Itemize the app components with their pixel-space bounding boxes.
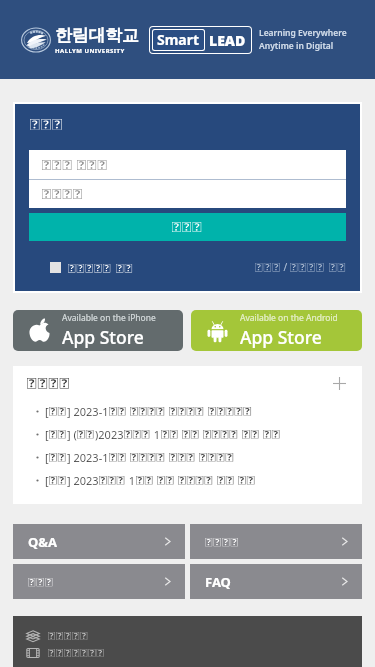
button[interactable] (190, 524, 362, 559)
staticText: 1 (151, 427, 161, 442)
staticText: ] ( (67, 427, 77, 442)
staticText: ] 2023 (67, 473, 99, 488)
button[interactable]: [ (13, 400, 362, 423)
button[interactable]: Available on the Android (191, 310, 362, 351)
staticText: Learning Everywhere (259, 27, 347, 39)
staticText: App Store (240, 325, 322, 349)
staticText: HALLYM UNIVERSITY (55, 47, 125, 55)
staticText: ] 2023-1 (67, 450, 109, 465)
button[interactable] (13, 647, 362, 659)
other: Smart LEAD (152, 29, 249, 51)
staticText: LEAD (209, 31, 246, 50)
staticText: [ (45, 427, 49, 442)
button[interactable]: Available on the iPhone (13, 310, 183, 351)
staticText: App Store (62, 325, 144, 349)
staticText: ] 2023-1 (67, 404, 109, 419)
button[interactable] (13, 624, 362, 647)
button[interactable] (50, 260, 133, 275)
button[interactable]: / (255, 258, 346, 276)
button[interactable]: More notices (328, 372, 350, 394)
staticText: FAQ (205, 573, 231, 591)
button[interactable]: [ (13, 446, 362, 469)
staticText: Q&A (28, 533, 58, 551)
other: Hallym University (21, 25, 51, 55)
staticText: Smart (157, 30, 200, 49)
staticText: [ (45, 404, 49, 419)
staticText: Available on the Android (240, 312, 338, 324)
staticText: [ (45, 450, 49, 465)
staticText: Available on the iPhone (62, 312, 156, 324)
button[interactable]: [ (13, 469, 362, 492)
button[interactable] (13, 564, 185, 599)
button[interactable]: FAQ (190, 564, 362, 599)
staticText: 1 (126, 473, 136, 488)
staticText: 한림대학교 (55, 25, 139, 46)
button[interactable] (29, 213, 346, 241)
staticText: / (281, 260, 290, 274)
staticText: Anytime in Digital (259, 40, 334, 52)
button[interactable]: Q&A (13, 524, 185, 559)
staticText: )2023 (95, 427, 124, 442)
staticText: [ (45, 473, 49, 488)
button[interactable]: [ (13, 423, 362, 446)
